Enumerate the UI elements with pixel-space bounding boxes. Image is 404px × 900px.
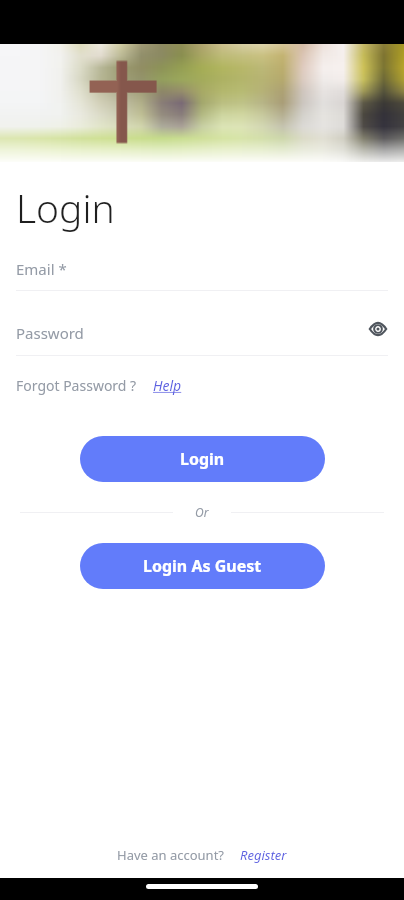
staticText: Forgot Password ? bbox=[16, 376, 137, 395]
staticText: Or bbox=[195, 504, 209, 520]
button[interactable]: Email * bbox=[16, 259, 388, 291]
button[interactable]: Login As Guest bbox=[80, 543, 325, 589]
button[interactable]: Show password bbox=[366, 317, 390, 341]
staticText: Login bbox=[180, 448, 225, 470]
staticText: Password bbox=[16, 323, 364, 343]
staticText: Email * bbox=[16, 259, 67, 279]
staticText: Login As Guest bbox=[143, 555, 262, 577]
button[interactable]: Help bbox=[153, 376, 182, 395]
button[interactable]: Register bbox=[240, 846, 287, 864]
button[interactable]: Login bbox=[80, 436, 325, 482]
button[interactable]: Password bbox=[16, 321, 388, 356]
staticText: Login bbox=[16, 181, 115, 234]
staticText: Have an account? bbox=[117, 846, 224, 864]
